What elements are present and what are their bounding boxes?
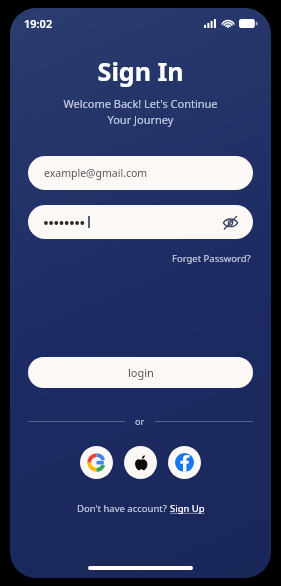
button[interactable]: Sign Up bbox=[170, 502, 205, 515]
button[interactable]: Hide password bbox=[28, 205, 253, 239]
button[interactable]: Sign in with Facebook bbox=[168, 446, 201, 479]
staticText: or bbox=[135, 415, 145, 427]
staticText: Sign In bbox=[10, 54, 271, 88]
staticText: Don't have account? bbox=[77, 502, 170, 515]
button[interactable]: Hide password bbox=[219, 211, 241, 233]
staticText: Sign Up bbox=[170, 502, 205, 515]
staticText: login bbox=[128, 365, 154, 380]
button[interactable]: Sign in with Apple bbox=[124, 446, 157, 479]
staticText: Forget Password? bbox=[172, 252, 251, 265]
button[interactable]: Sign in with Google bbox=[80, 446, 113, 479]
staticText: example@gmail.com bbox=[44, 166, 148, 180]
button[interactable]: example@gmail.com bbox=[28, 156, 253, 190]
button[interactable]: login bbox=[28, 357, 253, 388]
staticText: 19:02 bbox=[24, 16, 53, 31]
staticText: Welcome Back! Let's Continue Your Journe… bbox=[30, 96, 251, 127]
button[interactable]: Forget Password? bbox=[172, 252, 251, 265]
